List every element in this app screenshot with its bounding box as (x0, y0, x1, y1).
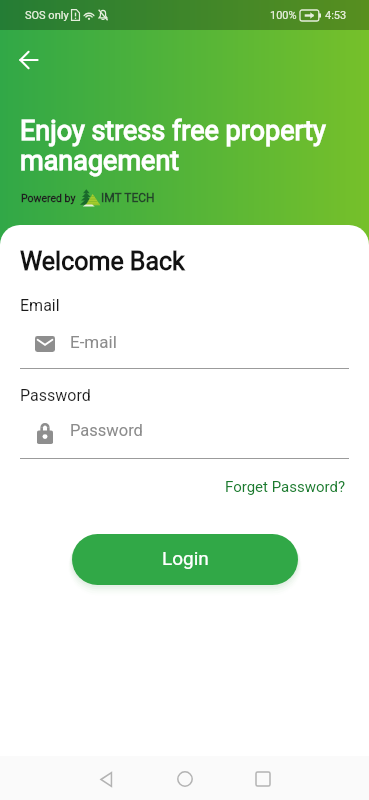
button[interactable]: Back (78, 757, 134, 800)
button[interactable]: Recents (235, 757, 291, 800)
staticText: Welcome Back (20, 247, 185, 276)
staticText: Email (20, 296, 60, 315)
staticText: Forget Password? (225, 478, 345, 496)
button[interactable]: Home (157, 757, 213, 800)
button[interactable]: Login (72, 534, 298, 585)
staticText: SOS only (25, 9, 69, 22)
button[interactable]: Forget Password? (217, 470, 353, 504)
staticText: Enjoy stress free property management (20, 115, 326, 177)
staticText: E-mail (70, 332, 117, 352)
staticText: Login (162, 547, 209, 569)
staticText: 4:53 (325, 9, 347, 22)
staticText: Password (70, 421, 143, 440)
staticText: Password (20, 386, 91, 405)
button[interactable]: Back (11, 42, 47, 78)
staticText: IMT TECH (101, 191, 155, 205)
staticText: 100% (270, 9, 297, 22)
staticText: Powered by (21, 192, 76, 204)
